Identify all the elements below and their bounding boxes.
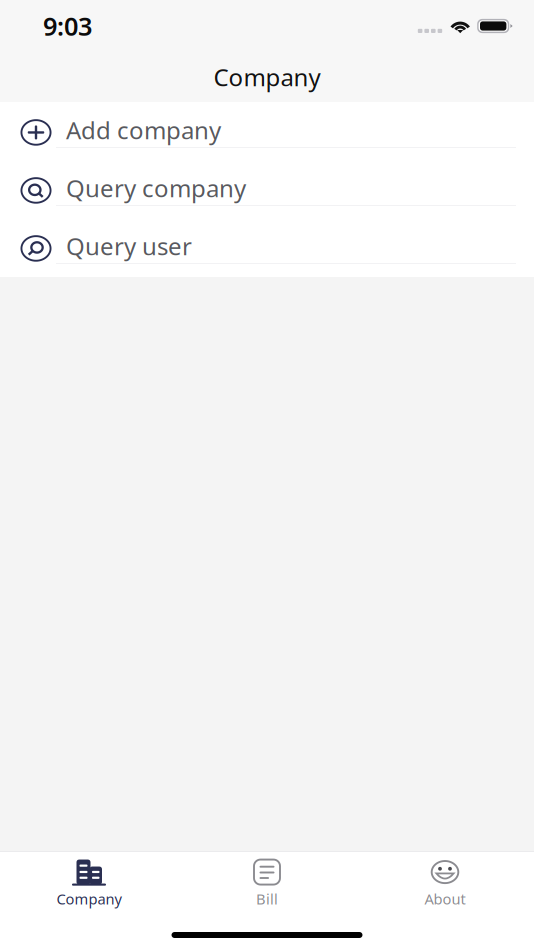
button[interactable]: About <box>356 848 534 909</box>
staticText: Company <box>213 61 320 93</box>
staticText: Add company <box>66 114 221 146</box>
staticText: Bill <box>256 889 278 909</box>
button[interactable]: Company <box>0 848 178 909</box>
button[interactable]: Add company <box>0 102 534 148</box>
staticText: About <box>424 889 465 909</box>
button[interactable]: Bill <box>178 848 356 909</box>
button[interactable]: Query user <box>0 206 534 264</box>
staticText: Query user <box>66 230 192 262</box>
staticText: 9:03 <box>43 9 92 43</box>
staticText: Company <box>56 889 121 909</box>
button[interactable]: Query company <box>0 148 534 206</box>
staticText: Query company <box>66 172 246 204</box>
